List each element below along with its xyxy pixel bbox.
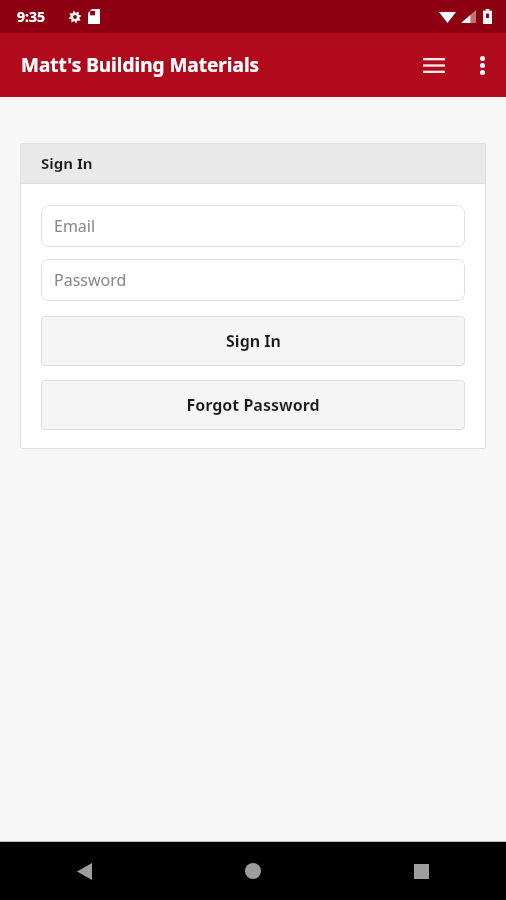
- staticText: Sign In: [41, 153, 93, 173]
- button[interactable]: Sign In: [41, 316, 465, 366]
- button[interactable]: Password: [41, 259, 465, 301]
- button[interactable]: Menu: [410, 41, 458, 89]
- button[interactable]: Email: [41, 205, 465, 247]
- staticText: Password: [54, 269, 127, 291]
- staticText: Matt's Building Materials: [21, 52, 260, 78]
- button[interactable]: Back: [0, 842, 168, 900]
- staticText: Sign In: [226, 330, 281, 352]
- staticText: 9:35: [17, 7, 45, 26]
- staticText: Email: [54, 215, 96, 237]
- button[interactable]: More options: [458, 41, 506, 89]
- button[interactable]: Forgot Password: [41, 380, 465, 430]
- button[interactable]: Recent apps: [337, 842, 506, 900]
- staticText: Forgot Password: [186, 394, 320, 416]
- button[interactable]: Home: [168, 842, 337, 900]
